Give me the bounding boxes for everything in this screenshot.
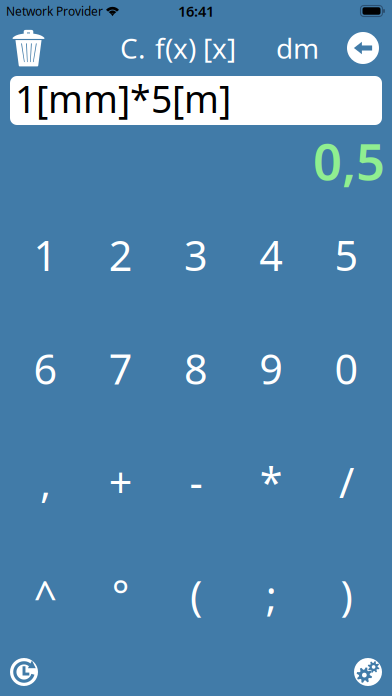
staticText: 1 (34, 228, 58, 282)
button[interactable]: + (83, 425, 158, 538)
staticText: 2 (109, 228, 133, 282)
staticText: dm (276, 29, 319, 67)
staticText: / (339, 454, 354, 509)
button[interactable]: ( (158, 539, 234, 652)
staticText: 0,5 (313, 127, 385, 194)
button[interactable]: f(x) (151, 22, 200, 74)
staticText: C. (120, 29, 146, 67)
button[interactable]: C. (115, 22, 151, 74)
button[interactable]: 6 (8, 312, 83, 425)
staticText: ) (340, 568, 352, 623)
button[interactable]: ^ (8, 539, 83, 652)
button[interactable]: * (234, 425, 309, 538)
button[interactable]: Backspace (344, 22, 382, 74)
staticText: - (189, 454, 202, 509)
staticText: + (109, 454, 133, 509)
staticText: , (40, 454, 51, 509)
button[interactable]: 7 (83, 312, 158, 425)
button[interactable]: History (2, 652, 46, 692)
staticText: 3 (184, 228, 208, 282)
staticText: 8 (184, 341, 208, 396)
staticText: 5 (334, 228, 358, 282)
staticText: 4 (259, 228, 283, 282)
staticText: [x] (203, 29, 236, 67)
button[interactable]: 5 (309, 198, 384, 312)
staticText: ° (112, 568, 130, 623)
button[interactable]: 3 (158, 198, 234, 312)
staticText: 7 (109, 341, 133, 396)
button[interactable]: ) (309, 539, 384, 652)
button[interactable]: ; (234, 539, 309, 652)
staticText: * (260, 454, 283, 509)
staticText: 9 (259, 341, 283, 396)
button[interactable]: 9 (234, 312, 309, 425)
button[interactable]: 1 (8, 198, 83, 312)
button[interactable]: Clear (6, 22, 51, 74)
button[interactable]: dm (270, 22, 325, 74)
staticText: ; (266, 568, 277, 623)
button[interactable]: 0 (309, 312, 384, 425)
button[interactable]: 4 (234, 198, 309, 312)
button[interactable]: 8 (158, 312, 234, 425)
staticText: f(x) (155, 29, 196, 67)
staticText: ^ (34, 568, 58, 623)
button[interactable]: [x] (200, 22, 238, 74)
button[interactable]: 2 (83, 198, 158, 312)
button[interactable]: , (8, 425, 83, 538)
staticText: 6 (34, 341, 58, 396)
staticText: 0 (334, 341, 358, 396)
staticText: 1[mm]*5[m] (15, 74, 231, 123)
staticText: ( (190, 568, 202, 623)
button[interactable]: / (309, 425, 384, 538)
button[interactable]: - (158, 425, 234, 538)
staticText: 16:41 (178, 1, 214, 21)
staticText: Network Provider (6, 3, 103, 19)
button[interactable]: Settings (346, 652, 390, 692)
button[interactable]: ° (83, 539, 158, 652)
